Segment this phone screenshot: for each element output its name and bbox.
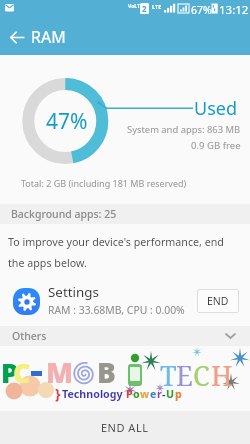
- staticText: r: [157, 387, 162, 402]
- staticText: RAM: [31, 26, 66, 48]
- staticText: o: [133, 387, 140, 402]
- staticText: P: [126, 387, 133, 402]
- staticText: 0.9 GB free: [191, 139, 241, 152]
- staticText: B: [97, 353, 116, 391]
- staticText: Technology: [62, 387, 126, 402]
- staticText: VoLTE: [128, 3, 143, 10]
- staticText: 67%: [191, 3, 212, 17]
- staticText: P: [1, 354, 19, 391]
- staticText: -: [162, 387, 166, 402]
- button[interactable]: Settings: [0, 279, 250, 325]
- staticText: Others: [12, 329, 47, 343]
- staticText: p: [175, 387, 182, 402]
- staticText: System and apps: 863 MB: [127, 123, 241, 136]
- staticText: To improve your device's performance, en…: [8, 235, 224, 270]
- staticText: END: [207, 294, 229, 308]
- staticText: Total: 2 GB (including 181 MB reserved): [21, 177, 187, 189]
- staticText: 47%: [46, 107, 88, 136]
- staticText: e: [150, 387, 157, 402]
- staticText: END ALL: [101, 420, 149, 435]
- staticText: w: [140, 387, 150, 402]
- button[interactable]: END ALL: [0, 411, 250, 444]
- staticText: Settings: [48, 283, 99, 301]
- staticText: }: [55, 384, 61, 403]
- staticText: H: [211, 357, 233, 394]
- staticText: LTE: [152, 3, 162, 10]
- staticText: 13:12: [219, 2, 249, 18]
- staticText: RAM : 33.68MB, CPU : 0.00%: [48, 303, 185, 317]
- staticText: C: [193, 357, 210, 394]
- button[interactable]: END: [197, 289, 239, 313]
- staticText: U: [166, 387, 175, 402]
- staticText: 2: [142, 3, 147, 14]
- staticText: Used: [194, 96, 238, 121]
- staticText: M: [46, 353, 74, 391]
- staticText: Background apps: 25: [11, 207, 117, 221]
- staticText: E: [176, 357, 193, 394]
- staticText: C: [13, 354, 31, 391]
- button[interactable]: Others: [0, 326, 250, 346]
- staticText: T: [160, 357, 177, 394]
- button[interactable]: Back: [0, 20, 34, 54]
